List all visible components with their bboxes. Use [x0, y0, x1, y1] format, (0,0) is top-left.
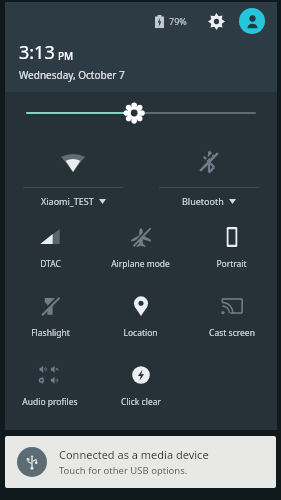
staticText: Bluetooth [182, 195, 224, 207]
button[interactable]: Location [95, 290, 186, 341]
button[interactable]: Bluetooth [141, 145, 277, 207]
staticText: Audio profiles [22, 396, 78, 408]
staticText: Touch for other USB options. [59, 464, 188, 477]
staticText: Wednesday, October 7 [19, 68, 125, 82]
button[interactable]: Connected as a media device [5, 436, 276, 488]
button[interactable]: Flashlight [5, 290, 95, 341]
button[interactable]: Xiaomi_TEST [5, 145, 141, 207]
staticText: 79% [169, 15, 187, 27]
staticText: Cast screen [209, 327, 255, 339]
staticText: PM [58, 49, 74, 63]
button[interactable]: User [239, 8, 265, 34]
staticText: Click clear [121, 396, 161, 408]
staticText: Flashlight [31, 327, 70, 339]
button[interactable]: DTAC [5, 221, 95, 272]
staticText: DTAC [40, 258, 61, 270]
button[interactable]: Settings [203, 8, 229, 34]
button[interactable]: Cast screen [186, 290, 277, 341]
button[interactable]: Portrait [186, 221, 277, 272]
button[interactable]: Airplane mode [95, 221, 186, 272]
staticText: 3:13 [19, 40, 55, 65]
staticText: Connected as a media device [59, 447, 209, 462]
staticText: Location [123, 327, 158, 339]
button[interactable]: Click clear [95, 359, 186, 410]
staticText: Airplane mode [111, 258, 170, 270]
staticText: Xiaomi_TEST [41, 195, 94, 207]
staticText: Portrait [216, 258, 247, 270]
button[interactable]: Audio profiles [5, 359, 95, 410]
button[interactable]: Brightness [5, 93, 277, 133]
